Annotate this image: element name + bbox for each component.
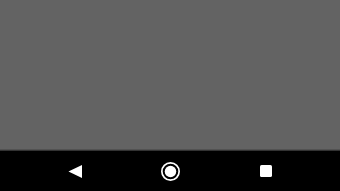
button[interactable]: Home	[146, 151, 194, 191]
button[interactable]: Back	[51, 151, 99, 191]
button[interactable]: Recent apps	[242, 151, 290, 191]
